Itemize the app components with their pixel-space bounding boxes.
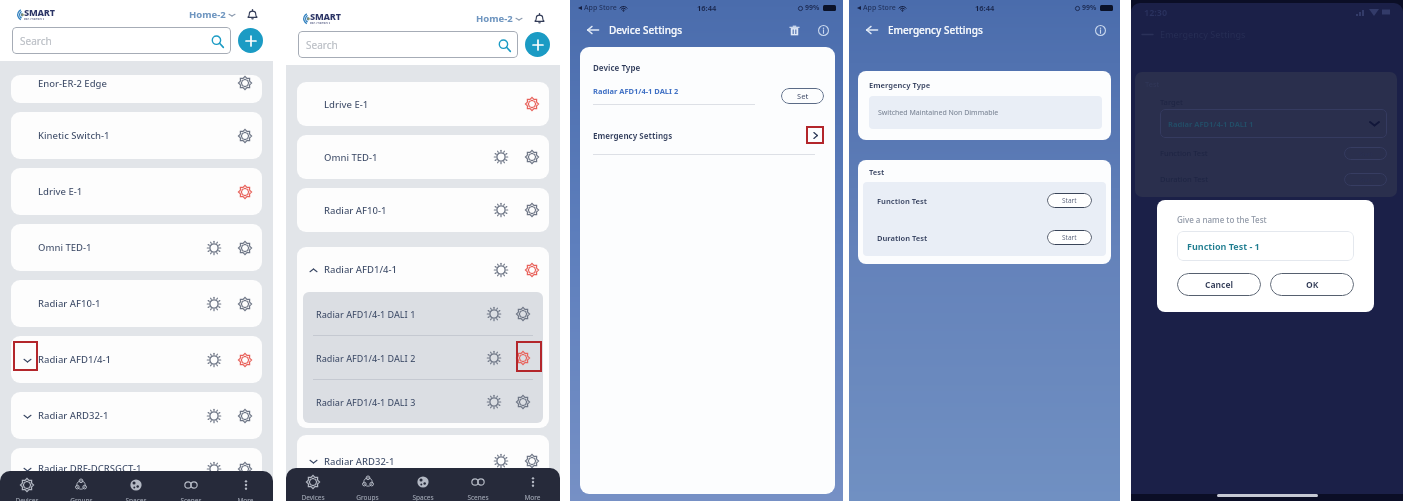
button[interactable]: Brightness — [205, 460, 223, 478]
button[interactable]: Brightness — [492, 261, 510, 279]
staticText: Ldrive E-1 — [38, 185, 83, 198]
button[interactable]: Brightness — [205, 295, 223, 313]
button[interactable]: Spaces — [395, 468, 450, 501]
staticText: Search — [20, 34, 52, 48]
button[interactable]: Cancel — [1177, 273, 1261, 296]
staticText: Radiar AFD1/4-1 DALI 1 — [316, 308, 416, 320]
staticText: Set — [797, 91, 809, 101]
button[interactable]: Ldrive E-1 — [11, 168, 262, 215]
button[interactable]: Spaces — [108, 471, 163, 501]
button[interactable]: Settings — [236, 75, 254, 92]
button[interactable]: Radiar AFD1/4-1 DALI 1 — [303, 292, 543, 335]
button[interactable]: Expand — [306, 454, 320, 468]
button[interactable]: More — [218, 471, 273, 501]
button[interactable]: Scenes — [450, 468, 505, 501]
button[interactable]: Brightness — [205, 239, 223, 257]
button[interactable]: Settings — [514, 349, 532, 367]
button[interactable]: Start — [1047, 193, 1092, 208]
button[interactable]: Start — [1344, 173, 1387, 186]
button[interactable]: Settings — [236, 295, 254, 313]
button[interactable]: Settings — [523, 201, 541, 219]
button[interactable]: Omni TED-1 — [11, 224, 262, 271]
button[interactable]: Radiar AF10-1 — [297, 188, 549, 232]
button[interactable]: Radiar AFD1/4-1 DALI 3 — [303, 380, 543, 423]
button[interactable]: Groups — [54, 471, 108, 501]
button[interactable]: Scenes — [163, 471, 218, 501]
button[interactable]: Radiar AFD1/4-1 DALI 2 — [303, 336, 543, 379]
button[interactable]: Start — [1344, 147, 1387, 160]
button[interactable]: Settings — [236, 460, 254, 478]
staticText: PRO-CONTROLS — [310, 22, 331, 24]
button[interactable]: Expand — [11, 392, 262, 439]
button[interactable]: Expand — [11, 336, 262, 383]
button[interactable]: Devices — [286, 468, 340, 501]
button[interactable]: Settings — [514, 305, 532, 323]
button[interactable]: Settings — [236, 183, 254, 201]
staticText: Cancel — [1205, 279, 1234, 291]
button[interactable]: Brightness — [492, 201, 510, 219]
staticText: Radiar AF10-1 — [38, 297, 101, 310]
button[interactable]: Brightness — [485, 305, 503, 323]
staticText: SMART — [24, 6, 55, 18]
button[interactable]: Set — [781, 88, 824, 104]
button[interactable]: Info — [1092, 22, 1108, 38]
button[interactable]: Settings — [523, 95, 541, 113]
button[interactable]: Back — [864, 22, 880, 38]
button[interactable]: Collapse — [297, 247, 549, 292]
staticText: Device Type — [593, 62, 641, 73]
button[interactable]: Groups — [340, 468, 395, 501]
button[interactable]: Brightness — [485, 393, 503, 411]
button[interactable]: Start — [1047, 230, 1092, 245]
staticText: Radiar AFD1/4-1 — [324, 263, 398, 276]
button[interactable]: Brightness — [492, 452, 510, 470]
staticText: Kinetic Switch-1 — [38, 129, 110, 142]
button[interactable]: Emergency Settings — [593, 125, 824, 145]
button[interactable]: Expand — [20, 462, 34, 476]
button[interactable]: Expand — [20, 409, 34, 423]
button[interactable]: Add — [238, 28, 263, 53]
button[interactable]: Expand — [20, 353, 34, 367]
button[interactable]: Ldrive E-1 — [297, 82, 549, 126]
button[interactable]: Devices — [0, 471, 54, 501]
button[interactable]: Settings — [236, 407, 254, 425]
button[interactable]: Search — [20, 27, 224, 54]
button[interactable]: Settings — [523, 261, 541, 279]
staticText: Radiar AFD1/4-1 — [38, 353, 112, 366]
button[interactable]: Settings — [236, 351, 254, 369]
button[interactable]: OK — [1270, 273, 1354, 296]
staticText: Target — [1160, 97, 1183, 107]
button[interactable]: Kinetic Switch-1 — [11, 112, 262, 159]
button[interactable]: Collapse — [306, 263, 320, 277]
button[interactable]: Back — [585, 22, 601, 38]
button[interactable]: Brightness — [485, 349, 503, 367]
staticText: Scenes — [180, 496, 202, 501]
button[interactable]: More — [505, 468, 560, 501]
button[interactable]: Settings — [523, 148, 541, 166]
button[interactable]: Brightness — [492, 148, 510, 166]
button[interactable]: Home-2 — [189, 8, 235, 21]
button[interactable]: Radiar AF10-1 — [11, 280, 262, 327]
staticText: Emergency Settings — [593, 130, 673, 141]
button[interactable]: Notifications — [532, 11, 546, 25]
button[interactable]: Delete — [786, 22, 802, 38]
button[interactable]: Settings — [514, 393, 532, 411]
button[interactable]: Home-2 — [476, 12, 522, 25]
button[interactable]: Brightness — [205, 407, 223, 425]
button[interactable]: Add — [525, 32, 550, 57]
button[interactable]: Settings — [523, 452, 541, 470]
button[interactable]: Expand — [11, 448, 262, 495]
button[interactable]: Search — [306, 31, 511, 58]
button[interactable]: Notifications — [245, 7, 259, 21]
button[interactable]: Info — [815, 22, 831, 38]
staticText: Omni TED-1 — [324, 151, 378, 164]
staticText: Give a name to the Test — [1177, 214, 1267, 225]
staticText: Test — [869, 167, 885, 177]
button[interactable]: Expand — [297, 435, 549, 479]
button[interactable]: Omni TED-1 — [297, 135, 549, 179]
button[interactable]: Settings — [236, 127, 254, 145]
button[interactable]: Brightness — [205, 351, 223, 369]
button[interactable]: Enor-ER-2 Edge — [11, 75, 262, 103]
button[interactable]: Settings — [236, 239, 254, 257]
staticText: Function Test — [1160, 148, 1208, 158]
